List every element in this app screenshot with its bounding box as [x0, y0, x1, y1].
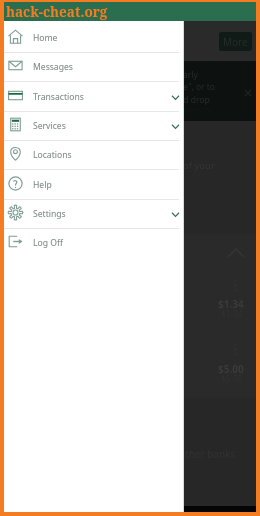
staticText: Help [33, 179, 52, 191]
button[interactable]: Messages [4, 53, 184, 82]
staticText: ne", or to [178, 81, 215, 93]
staticText: $1.34 [218, 297, 244, 311]
button[interactable]: Home [4, 24, 184, 53]
staticText: arly [183, 69, 198, 81]
staticText: Services [33, 120, 66, 132]
button[interactable]: More [219, 32, 252, 51]
button[interactable]: Locations [4, 141, 184, 170]
staticText: hack-cheat.org [6, 3, 108, 21]
staticText: m more [183, 104, 213, 115]
staticText: Transactions [33, 91, 84, 103]
staticText: Locations [33, 149, 72, 161]
staticText: other banks [179, 447, 236, 461]
staticText: of your [183, 159, 215, 172]
button[interactable]: Help [4, 171, 184, 200]
button[interactable]: Settings [4, 200, 184, 229]
staticText: nd drop [178, 94, 210, 106]
staticText: Home [33, 32, 58, 44]
button[interactable]: Services [4, 112, 184, 141]
staticText: Settings [33, 208, 66, 220]
staticText: Messages [33, 61, 73, 73]
staticText: $5.00 [218, 362, 244, 376]
button[interactable]: Transactions [4, 83, 184, 112]
staticText: Log Off [33, 237, 63, 249]
staticText: More [223, 35, 248, 49]
button[interactable]: Log Off [4, 229, 184, 258]
